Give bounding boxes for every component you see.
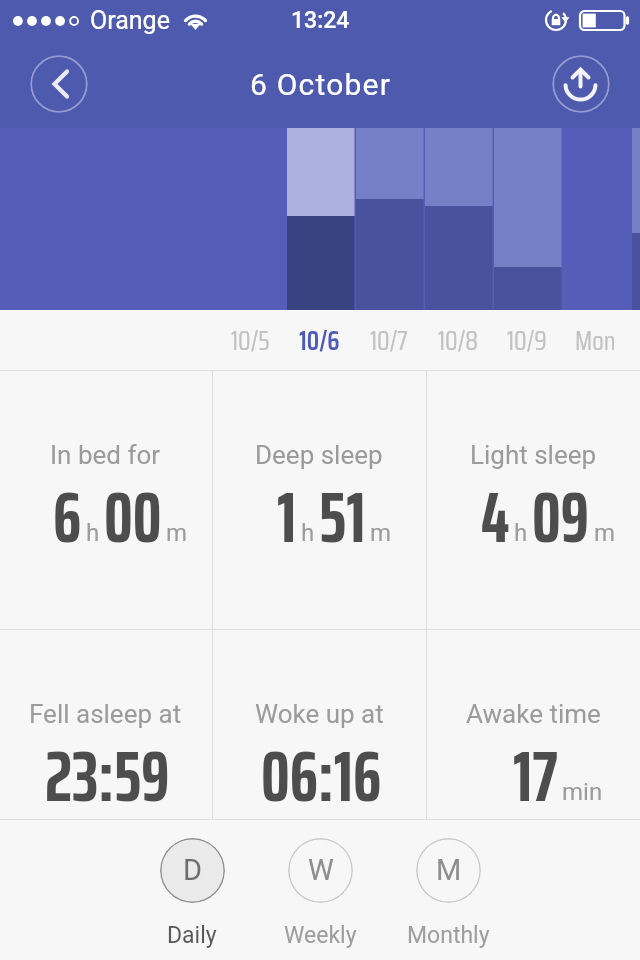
button[interactable]: Fell asleep at bbox=[0, 630, 212, 819]
staticText: Woke up at bbox=[255, 699, 384, 729]
staticText: Orange bbox=[90, 6, 170, 35]
staticText: 6 bbox=[53, 460, 82, 573]
staticText: h bbox=[301, 519, 315, 547]
staticText: 10/9 bbox=[507, 320, 547, 361]
button[interactable]: Deep sleep bbox=[213, 371, 426, 629]
button[interactable]: Share bbox=[552, 55, 610, 113]
staticText: 51 bbox=[319, 460, 366, 573]
staticText: Awake time bbox=[466, 699, 601, 729]
staticText: 09 bbox=[532, 460, 590, 573]
staticText: 17 bbox=[513, 719, 558, 832]
staticText: Deep sleep bbox=[255, 440, 383, 470]
button[interactable]: D bbox=[128, 820, 256, 959]
staticText: D bbox=[183, 853, 203, 887]
staticText: 10/8 bbox=[438, 320, 478, 361]
button[interactable]: 10/5 bbox=[216, 311, 285, 370]
staticText: Weekly bbox=[284, 922, 357, 949]
staticText: min bbox=[562, 778, 603, 806]
staticText: m bbox=[594, 519, 616, 547]
staticText: Fell asleep at bbox=[29, 699, 182, 729]
staticText: 10/6 bbox=[299, 320, 340, 361]
button[interactable]: In bed for bbox=[0, 371, 212, 629]
button[interactable]: Light sleep bbox=[427, 371, 640, 629]
staticText: 6 October bbox=[250, 67, 391, 102]
staticText: h bbox=[514, 519, 528, 547]
button[interactable]: 10/7 bbox=[354, 311, 423, 370]
staticText: 1 bbox=[277, 460, 297, 573]
staticText: m bbox=[370, 519, 392, 547]
button[interactable]: Woke up at bbox=[213, 630, 426, 819]
staticText: h bbox=[86, 519, 100, 547]
button[interactable]: Awake time bbox=[427, 630, 640, 819]
staticText: Mon bbox=[575, 320, 616, 361]
staticText: In bed for bbox=[50, 440, 161, 470]
button[interactable]: Mon bbox=[561, 311, 630, 370]
staticText: 00 bbox=[104, 460, 162, 573]
staticText: 13:24 bbox=[291, 7, 350, 34]
button[interactable]: W bbox=[256, 820, 384, 959]
staticText: m bbox=[166, 519, 188, 547]
staticText: 23:59 bbox=[45, 719, 170, 832]
staticText: Daily bbox=[167, 922, 217, 949]
staticText: 06:16 bbox=[261, 719, 382, 832]
staticText: Monthly bbox=[407, 922, 490, 949]
button[interactable]: 10/8 bbox=[423, 311, 492, 370]
staticText: M bbox=[436, 853, 462, 887]
staticText: 4 bbox=[481, 460, 510, 573]
button[interactable]: 10/6 bbox=[285, 311, 354, 370]
button[interactable]: M bbox=[384, 820, 512, 959]
button[interactable]: 10/9 bbox=[492, 311, 561, 370]
staticText: W bbox=[308, 853, 334, 887]
staticText: Light sleep bbox=[470, 440, 597, 470]
staticText: 10/7 bbox=[370, 320, 408, 361]
staticText: 10/5 bbox=[231, 320, 270, 361]
button[interactable]: Back bbox=[30, 55, 88, 113]
